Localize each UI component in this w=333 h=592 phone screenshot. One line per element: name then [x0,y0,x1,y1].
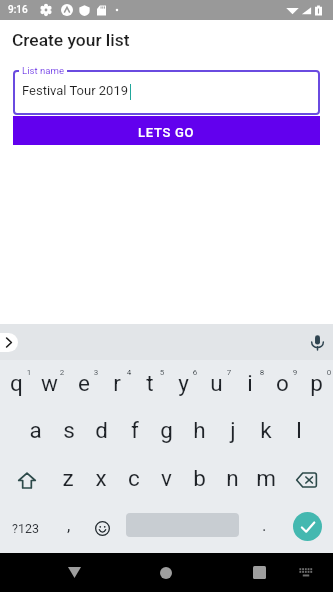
staticText: ?123 [12,521,39,536]
button[interactable]: Back [54,553,94,592]
button[interactable]: d [85,408,118,456]
staticText: 9:16 [8,4,28,16]
button[interactable]: Switch keyboard [291,553,321,592]
button[interactable]: u [200,360,233,408]
button[interactable]: Enter [293,512,322,541]
staticText: 5 [158,368,166,377]
button[interactable]: ?123 [0,504,50,552]
button[interactable]: h [183,408,216,456]
button[interactable]: t [133,360,166,408]
staticText: b [193,465,206,491]
button[interactable]: Expand suggestions [0,333,18,352]
button[interactable]: s [52,408,85,456]
button[interactable]: n [216,456,249,504]
button[interactable]: i [233,360,266,408]
button[interactable]: w [33,360,66,408]
button[interactable]: v [150,456,183,504]
button[interactable]: b [183,456,216,504]
button[interactable]: j [216,408,249,456]
button[interactable]: c [117,456,150,504]
staticText: 0 [325,368,333,377]
staticText: 3 [92,368,100,377]
staticText: 9 [291,368,299,377]
button[interactable]: Recents [239,553,279,592]
staticText: Festival Tour 2019 [22,83,129,98]
staticText: k [260,417,272,443]
staticText: n [226,465,239,491]
button[interactable]: m [249,456,282,504]
staticText: p [310,370,323,396]
button[interactable] [13,70,320,115]
button[interactable]: . [248,504,281,552]
button[interactable]: y [167,360,200,408]
staticText: g [160,417,173,443]
staticText: d [95,417,108,443]
button[interactable]: e [67,360,100,408]
button[interactable]: Shift [10,456,44,504]
staticText: Create your list [12,30,130,50]
button[interactable]: f [118,408,151,456]
staticText: 7 [225,368,233,377]
staticText: q [10,370,23,396]
staticText: 8 [258,368,266,377]
staticText: 1 [25,368,33,377]
button[interactable]: Home [146,553,186,592]
button[interactable]: x [84,456,117,504]
staticText: f [131,417,139,443]
button[interactable]: g [150,408,183,456]
staticText: 2 [58,368,66,377]
staticText: s [63,417,75,443]
staticText: w [41,370,58,396]
staticText: 4 [125,368,133,377]
staticText: a [29,417,42,443]
button[interactable]: Voice input [309,332,326,352]
staticText: 6 [191,368,199,377]
staticText: i [247,370,253,396]
button[interactable]: Emoji [86,504,119,552]
staticText: , [67,515,71,535]
staticText: j [230,417,236,443]
staticText: c [128,465,140,491]
staticText: h [193,417,206,443]
button[interactable]: l [282,408,315,456]
staticText: x [95,465,107,491]
button[interactable]: z [51,456,84,504]
button[interactable]: a [19,408,52,456]
staticText: v [161,465,172,491]
button[interactable]: , [52,504,85,552]
button[interactable]: LETS GO [13,116,320,145]
staticText: e [78,370,90,396]
button[interactable]: r [100,360,133,408]
staticText: m [256,465,276,491]
button[interactable]: o [266,360,299,408]
staticText: y [178,370,189,396]
staticText: z [62,465,74,491]
button[interactable]: Backspace [289,456,324,504]
staticText: l [296,417,302,443]
staticText: List name [22,65,64,76]
staticText: . [262,515,267,535]
staticText: LETS GO [138,125,195,140]
staticText: o [276,370,289,396]
staticText: r [113,370,121,396]
button[interactable]: k [249,408,282,456]
staticText: t [146,370,154,396]
button[interactable]: p [300,360,333,408]
button[interactable]: q [0,360,33,408]
staticText: u [210,370,223,396]
